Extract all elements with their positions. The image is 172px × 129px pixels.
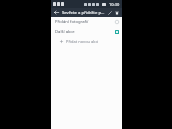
staticText: Sevřete a přidržte pro fotky — [62, 10, 106, 16]
staticText: 10:30 — [109, 2, 120, 7]
button[interactable]: Back — [53, 9, 60, 16]
button[interactable]: Delete — [113, 9, 120, 16]
staticText: Přidání fotografií — [55, 19, 115, 25]
button[interactable]: Přidání fotografií — [51, 17, 122, 27]
button[interactable]: Další akce — [51, 27, 122, 37]
staticText: Další akce — [55, 29, 115, 35]
button[interactable]: Přidat novou akci — [51, 37, 122, 46]
staticText: Přidat novou akci — [66, 39, 99, 44]
button[interactable]: Edit — [106, 9, 113, 16]
